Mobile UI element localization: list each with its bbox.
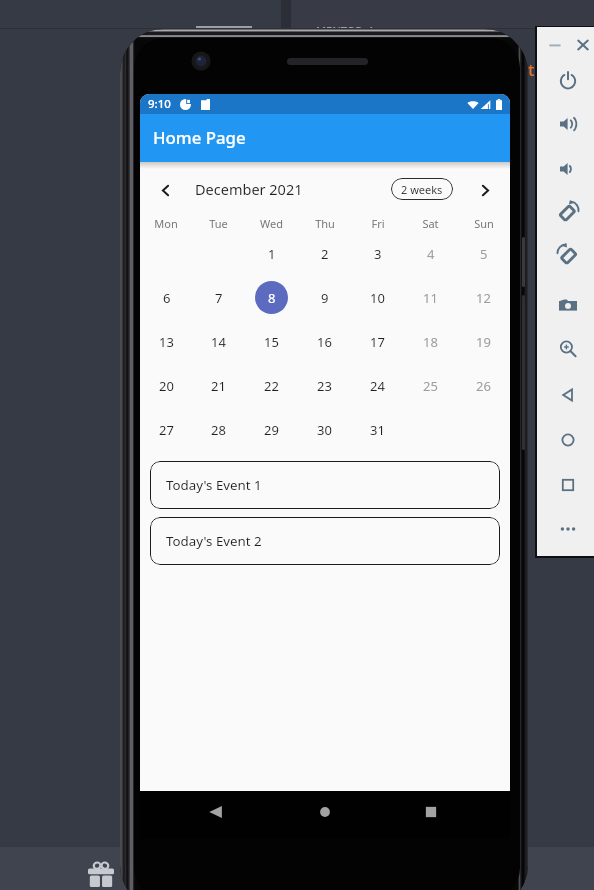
staticText: 29	[264, 421, 279, 439]
staticText: 12	[476, 289, 491, 307]
staticText: Today's Event 2	[166, 532, 262, 550]
button[interactable]: 11	[414, 281, 447, 314]
button[interactable]: Previous month	[152, 177, 178, 203]
button[interactable]: 18	[414, 325, 447, 358]
staticText: 30	[317, 421, 332, 439]
button[interactable]: Home	[557, 429, 579, 451]
button[interactable]: 3	[361, 237, 394, 270]
staticText: 27	[159, 421, 174, 439]
staticText: Thu	[315, 216, 335, 231]
button[interactable]: Rotate right	[557, 244, 579, 266]
staticText: 2	[321, 245, 329, 263]
staticText: 31	[370, 421, 385, 439]
staticText: 25	[423, 377, 438, 395]
button[interactable]: 31	[361, 413, 394, 446]
staticText: Sat	[422, 216, 439, 231]
staticText: 22	[264, 377, 279, 395]
button[interactable]: 17	[361, 325, 394, 358]
staticText: 26	[476, 377, 491, 395]
button[interactable]: Minimize	[544, 34, 566, 56]
staticText: Fri	[371, 216, 385, 231]
staticText: 20	[159, 377, 174, 395]
button[interactable]: 27	[150, 413, 183, 446]
staticText: 6	[163, 289, 171, 307]
button[interactable]: Rotate left	[557, 201, 579, 223]
button[interactable]: 1	[255, 237, 288, 270]
button[interactable]: Today's Event 2	[150, 517, 500, 565]
staticText: 2 weeks	[401, 182, 443, 197]
staticText: Today's Event 1	[166, 476, 262, 494]
button[interactable]: Recent apps	[416, 797, 446, 827]
staticText: Tue	[209, 216, 228, 231]
button[interactable]: Home	[310, 797, 340, 827]
staticText: 9	[321, 289, 329, 307]
staticText: 16	[317, 333, 332, 351]
button[interactable]: 13	[150, 325, 183, 358]
button[interactable]: 12	[467, 281, 500, 314]
button[interactable]: Back	[557, 384, 579, 406]
button[interactable]: Back	[201, 797, 231, 827]
staticText: 15	[264, 333, 279, 351]
button[interactable]: 16	[308, 325, 341, 358]
staticText: 23	[317, 377, 332, 395]
staticText: 17	[370, 333, 385, 351]
button[interactable]: 21	[202, 369, 235, 402]
button[interactable]: Close	[572, 34, 594, 56]
button[interactable]: 28	[202, 413, 235, 446]
staticText: MENTOR 1	[316, 23, 375, 28]
button[interactable]: 4	[414, 237, 447, 270]
staticText: 10	[370, 289, 385, 307]
button[interactable]: 25	[414, 369, 447, 402]
staticText: 9:10	[148, 96, 171, 112]
staticText: 14	[211, 333, 226, 351]
button[interactable]: 2 weeks	[391, 178, 453, 200]
button[interactable]: Volume down	[557, 158, 579, 180]
button[interactable]: Overview	[557, 474, 579, 496]
button[interactable]: 20	[150, 369, 183, 402]
staticText: 19	[476, 333, 491, 351]
staticText: 4	[427, 245, 435, 263]
button[interactable]: 22	[255, 369, 288, 402]
staticText: 1	[268, 245, 276, 263]
button[interactable]: Zoom	[557, 338, 579, 360]
button[interactable]: 10	[361, 281, 394, 314]
button[interactable]: 15	[255, 325, 288, 358]
staticText: 5	[480, 245, 488, 263]
staticText: 18	[423, 333, 438, 351]
button[interactable]: 19	[467, 325, 500, 358]
staticText: 11	[423, 289, 438, 307]
staticText: 3	[374, 245, 382, 263]
button[interactable]: 23	[308, 369, 341, 402]
staticText: 8	[268, 289, 276, 307]
button[interactable]: 5	[467, 237, 500, 270]
button[interactable]: Next month	[472, 177, 498, 203]
button[interactable]: 30	[308, 413, 341, 446]
button[interactable]: 8	[255, 281, 288, 314]
button[interactable]: 14	[202, 325, 235, 358]
button[interactable]: Volume up	[557, 113, 579, 135]
staticText: 7	[215, 289, 223, 307]
staticText: Home Page	[153, 126, 246, 149]
button[interactable]: 6	[150, 281, 183, 314]
staticText: 24	[370, 377, 385, 395]
button[interactable]: 26	[467, 369, 500, 402]
staticText: Wed	[260, 216, 283, 231]
staticText: Sun	[474, 216, 494, 231]
button[interactable]: 29	[255, 413, 288, 446]
staticText: 28	[211, 421, 226, 439]
button[interactable]: 24	[361, 369, 394, 402]
button[interactable]: 9	[308, 281, 341, 314]
button[interactable]: 7	[202, 281, 235, 314]
button[interactable]: Power	[557, 69, 579, 91]
button[interactable]: Today's Event 1	[150, 461, 500, 509]
staticText: Mon	[154, 216, 178, 231]
button[interactable]: Take screenshot	[557, 294, 579, 316]
button[interactable]: More options	[557, 518, 579, 540]
button[interactable]: 2	[308, 237, 341, 270]
staticText: 21	[211, 377, 226, 395]
staticText: 13	[159, 333, 174, 351]
staticText: t	[528, 58, 535, 81]
staticText: December 2021	[195, 179, 303, 199]
